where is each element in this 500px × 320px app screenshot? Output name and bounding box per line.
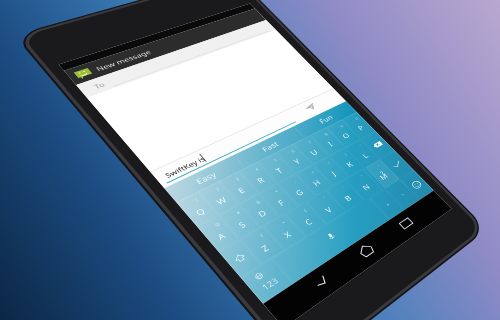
other: SwiftKey keyboard on a phone xyxy=(0,0,500,320)
